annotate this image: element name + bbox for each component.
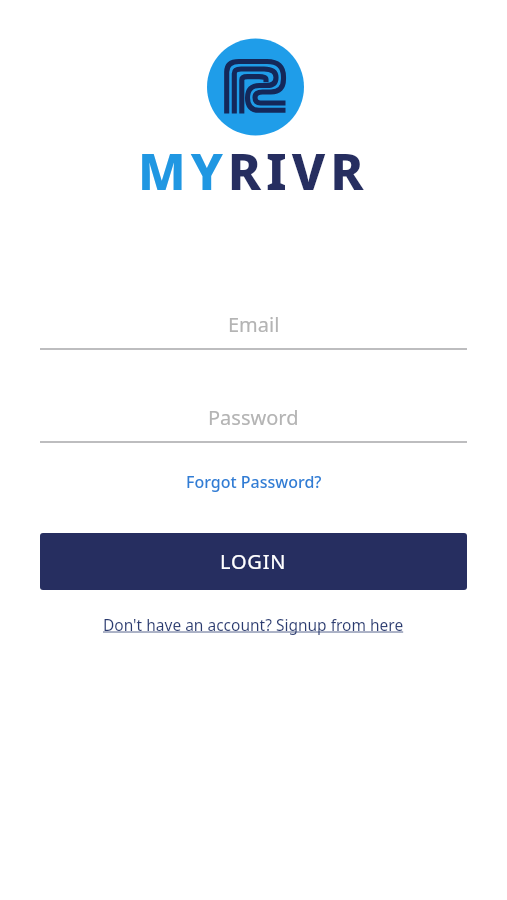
staticText: Email [228,311,280,338]
staticText: Don't have an account? Signup from here [103,614,404,635]
staticText: Forgot Password? [186,471,322,493]
staticText: MYRIVR [138,137,369,205]
staticText: Password [208,404,299,431]
staticText: LOGIN [220,548,287,575]
